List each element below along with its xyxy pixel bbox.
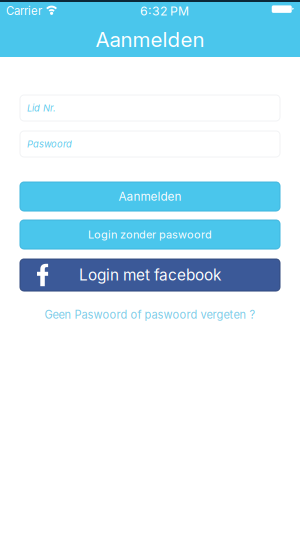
staticText: Aanmelden xyxy=(95,27,204,52)
staticText: Geen Paswoord of paswoord vergeten ? xyxy=(44,308,255,321)
staticText: Aanmelden xyxy=(118,189,181,204)
staticText: 6:32 PM xyxy=(140,4,189,18)
button[interactable]: Login zonder paswoord xyxy=(20,220,280,249)
button[interactable]: Aanmelden xyxy=(20,182,280,211)
staticText: Lid Nr. xyxy=(27,102,56,114)
button[interactable]: Geen Paswoord of paswoord vergeten ? xyxy=(44,308,255,321)
staticText: Carrier xyxy=(6,4,42,18)
staticText: Paswoord xyxy=(27,138,72,150)
button[interactable]: Login met facebook xyxy=(20,259,280,291)
staticText: Login zonder paswoord xyxy=(88,228,212,241)
staticText: Login met facebook xyxy=(79,266,221,284)
